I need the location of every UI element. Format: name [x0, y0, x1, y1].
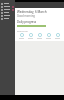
staticText: Shortcuts	[17, 29, 28, 32]
button[interactable]: Shortcut	[37, 33, 42, 39]
button[interactable]: Shortcut	[55, 33, 60, 39]
button[interactable]: Shortcut	[46, 33, 51, 39]
button[interactable]: Shortcut	[28, 33, 33, 39]
button[interactable]	[0, 8, 15, 11]
button[interactable]	[0, 14, 15, 17]
button[interactable]	[0, 17, 15, 20]
button[interactable]: Shortcut	[19, 33, 24, 39]
staticText: Daily progress	[17, 20, 37, 24]
button[interactable]	[0, 2, 15, 5]
button[interactable]	[0, 5, 15, 8]
staticText: Wednesday, 6 March	[17, 10, 47, 14]
button[interactable]	[0, 11, 15, 14]
staticText: Good morning	[17, 14, 35, 18]
